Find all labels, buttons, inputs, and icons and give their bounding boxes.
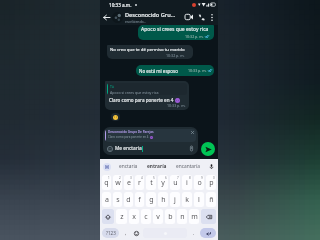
staticText: z <box>120 212 124 222</box>
staticText: 9 <box>201 176 203 180</box>
staticText: entraría <box>147 163 167 170</box>
button[interactable]: o <box>194 175 204 190</box>
button[interactable]: i <box>182 175 192 190</box>
staticText: Tú <box>110 84 114 89</box>
staticText: k <box>185 195 189 205</box>
button[interactable]: encantaría <box>175 163 201 170</box>
staticText: f <box>138 195 141 205</box>
button[interactable]: Video call <box>183 11 195 23</box>
staticText: , <box>125 230 127 237</box>
button[interactable]: More options <box>207 12 217 22</box>
button[interactable]: e <box>124 175 133 190</box>
button[interactable]: Group photo <box>112 12 123 23</box>
button[interactable]: r <box>135 175 144 190</box>
button[interactable]: Reaction <box>111 113 120 121</box>
button[interactable]: Keyboard modes <box>103 163 111 171</box>
button[interactable]: Voice input <box>208 163 215 170</box>
staticText: Desconocido Grupo De Parejas <box>108 130 154 134</box>
staticText: . <box>193 230 195 237</box>
staticText: 8 <box>189 176 191 180</box>
button[interactable]: u <box>170 175 180 190</box>
staticText: g <box>149 195 154 205</box>
button[interactable]: Voice call <box>195 11 207 23</box>
staticText: c <box>144 212 148 222</box>
staticText: u <box>173 178 178 188</box>
button[interactable]: ñ <box>206 192 216 207</box>
button[interactable]: q <box>102 175 111 190</box>
staticText: ñ <box>209 195 214 205</box>
staticText: b <box>168 212 173 222</box>
button[interactable]: d <box>124 192 133 207</box>
button[interactable]: x <box>129 209 139 224</box>
button[interactable]: m <box>189 209 199 224</box>
staticText: 10:32 p. m. <box>166 53 185 58</box>
button[interactable]: Backspace <box>201 209 216 224</box>
staticText: 10:33 a.m. <box>109 2 132 8</box>
staticText: ?123 <box>106 230 116 236</box>
staticText: s <box>116 195 120 205</box>
button[interactable]: k <box>182 192 192 207</box>
staticText: v <box>156 212 160 222</box>
button[interactable]: n <box>177 209 187 224</box>
staticText: Claro como para ponerte en 4 <box>109 97 174 103</box>
button[interactable]: f <box>135 192 144 207</box>
button[interactable]: Desconocido Grupo De Parejas <box>105 129 196 142</box>
button[interactable]: Emoji keyboard <box>131 225 142 240</box>
button[interactable]: p <box>206 175 216 190</box>
staticText: escribiendo… <box>125 19 147 24</box>
button[interactable]: Apoco si crees que estoy rica <box>138 25 214 40</box>
staticText: 10:33 p. m. <box>167 103 186 108</box>
staticText: e <box>127 178 131 188</box>
staticText: p <box>209 178 214 188</box>
button[interactable]: Attach <box>188 145 195 152</box>
staticText: l <box>198 195 200 205</box>
staticText: No creo que te dé permiso tu marido <box>110 46 185 52</box>
button[interactable]: No creo que te dé permiso tu marido <box>107 45 193 59</box>
button[interactable]: Back <box>100 11 112 23</box>
staticText: r <box>138 178 141 188</box>
staticText: 1 <box>108 176 110 180</box>
staticText: o <box>197 178 202 188</box>
button[interactable]: w <box>113 175 122 190</box>
button[interactable]: Cancel reply <box>190 130 195 135</box>
staticText: y <box>161 178 165 188</box>
button[interactable]: t <box>146 175 156 190</box>
staticText: enctaria <box>119 163 138 170</box>
button[interactable]: Shift <box>102 209 114 224</box>
staticText: n <box>180 212 185 222</box>
button[interactable]: Send <box>201 142 215 156</box>
button[interactable]: s <box>113 192 122 207</box>
staticText: No está mi esposo <box>139 68 178 74</box>
button[interactable]: l <box>194 192 204 207</box>
staticText: 5 <box>153 176 155 180</box>
button[interactable]: enctaria <box>118 163 139 170</box>
button[interactable]: g <box>146 192 156 207</box>
button[interactable]: Tú <box>105 81 189 110</box>
staticText: 6 <box>165 176 167 180</box>
button[interactable]: j <box>170 192 180 207</box>
staticText: Me enctaria <box>115 145 142 152</box>
staticText: a <box>105 195 109 205</box>
button[interactable]: z <box>116 209 127 224</box>
button[interactable]: Enter <box>200 228 216 238</box>
staticText: d <box>126 195 131 205</box>
button[interactable]: Emoji <box>106 145 113 152</box>
button[interactable]: , <box>120 225 131 240</box>
button[interactable]: . <box>188 225 199 240</box>
button[interactable]: ?123 <box>102 228 119 238</box>
staticText: t <box>150 178 153 188</box>
staticText: w <box>115 178 121 188</box>
button[interactable]: c <box>141 209 151 224</box>
button[interactable]: v <box>153 209 163 224</box>
button[interactable]: y <box>158 175 168 190</box>
staticText: Desconocido Gru… <box>125 11 176 19</box>
button[interactable]: No está mi esposo <box>136 65 214 76</box>
button[interactable]: a <box>102 192 111 207</box>
button[interactable]: b <box>165 209 175 224</box>
button[interactable]: entraría <box>146 163 168 170</box>
staticText: i <box>186 178 188 188</box>
staticText: 0 <box>213 176 215 180</box>
staticText: 3 <box>130 176 132 180</box>
button[interactable]: h <box>158 192 168 207</box>
